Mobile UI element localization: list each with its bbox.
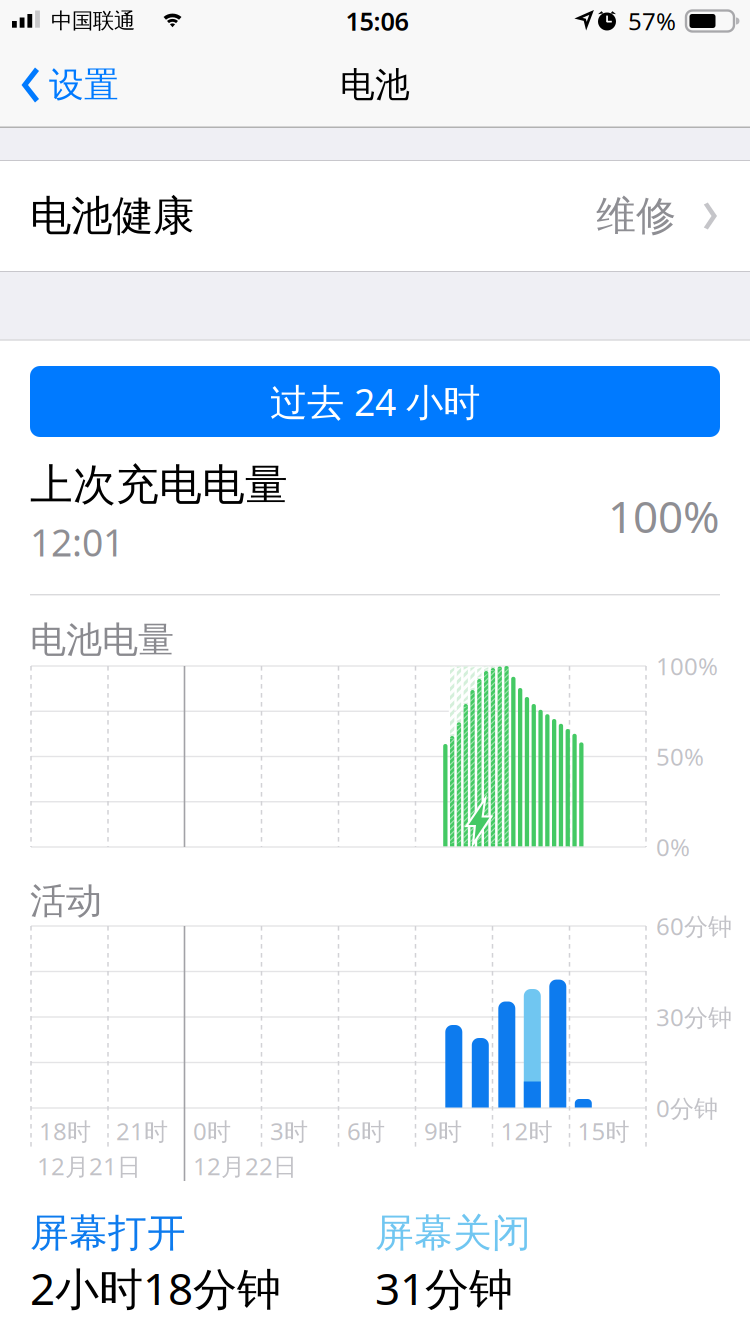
staticText: 中国联通 <box>51 8 135 34</box>
staticText: 31分钟 <box>375 1259 513 1317</box>
staticText: 活动 <box>30 879 102 923</box>
button[interactable]: 设置 <box>19 55 119 115</box>
staticText: 0分钟 <box>656 1092 718 1124</box>
staticText: 57% <box>628 5 676 37</box>
staticText: 电池 <box>340 64 410 106</box>
staticText: 21时 <box>116 1115 168 1147</box>
staticText: 60分钟 <box>656 910 732 942</box>
staticText: 3时 <box>270 1115 308 1147</box>
staticText: 12时 <box>500 1115 552 1147</box>
staticText: 18时 <box>39 1115 91 1147</box>
staticText: 12月21日 <box>37 1150 141 1182</box>
staticText: 9时 <box>424 1115 462 1147</box>
staticText: 过去 24 小时 <box>270 377 480 426</box>
staticText: 2小时18分钟 <box>30 1259 281 1317</box>
staticText: 30分钟 <box>656 1001 732 1033</box>
staticText: 维修 <box>596 191 676 240</box>
button[interactable]: 过去 24 小时 <box>30 366 720 437</box>
staticText: 12:01 <box>30 517 124 567</box>
staticText: 50% <box>656 741 704 772</box>
staticText: 100% <box>608 487 720 545</box>
staticText: 0时 <box>193 1115 231 1147</box>
staticText: 0% <box>656 831 690 863</box>
staticText: 屏幕打开 <box>30 1209 186 1257</box>
staticText: 设置 <box>49 64 119 106</box>
staticText: 6时 <box>347 1115 385 1147</box>
staticText: 屏幕关闭 <box>375 1209 531 1257</box>
staticText: 100% <box>656 650 718 682</box>
staticText: 上次充电电量 <box>30 459 288 511</box>
staticText: 15:06 <box>345 4 408 38</box>
staticText: 电池电量 <box>30 618 174 662</box>
button[interactable]: 电池健康 <box>0 161 750 271</box>
staticText: 电池健康 <box>30 191 194 241</box>
staticText: 12月22日 <box>193 1150 297 1182</box>
staticText: 15时 <box>577 1115 629 1147</box>
